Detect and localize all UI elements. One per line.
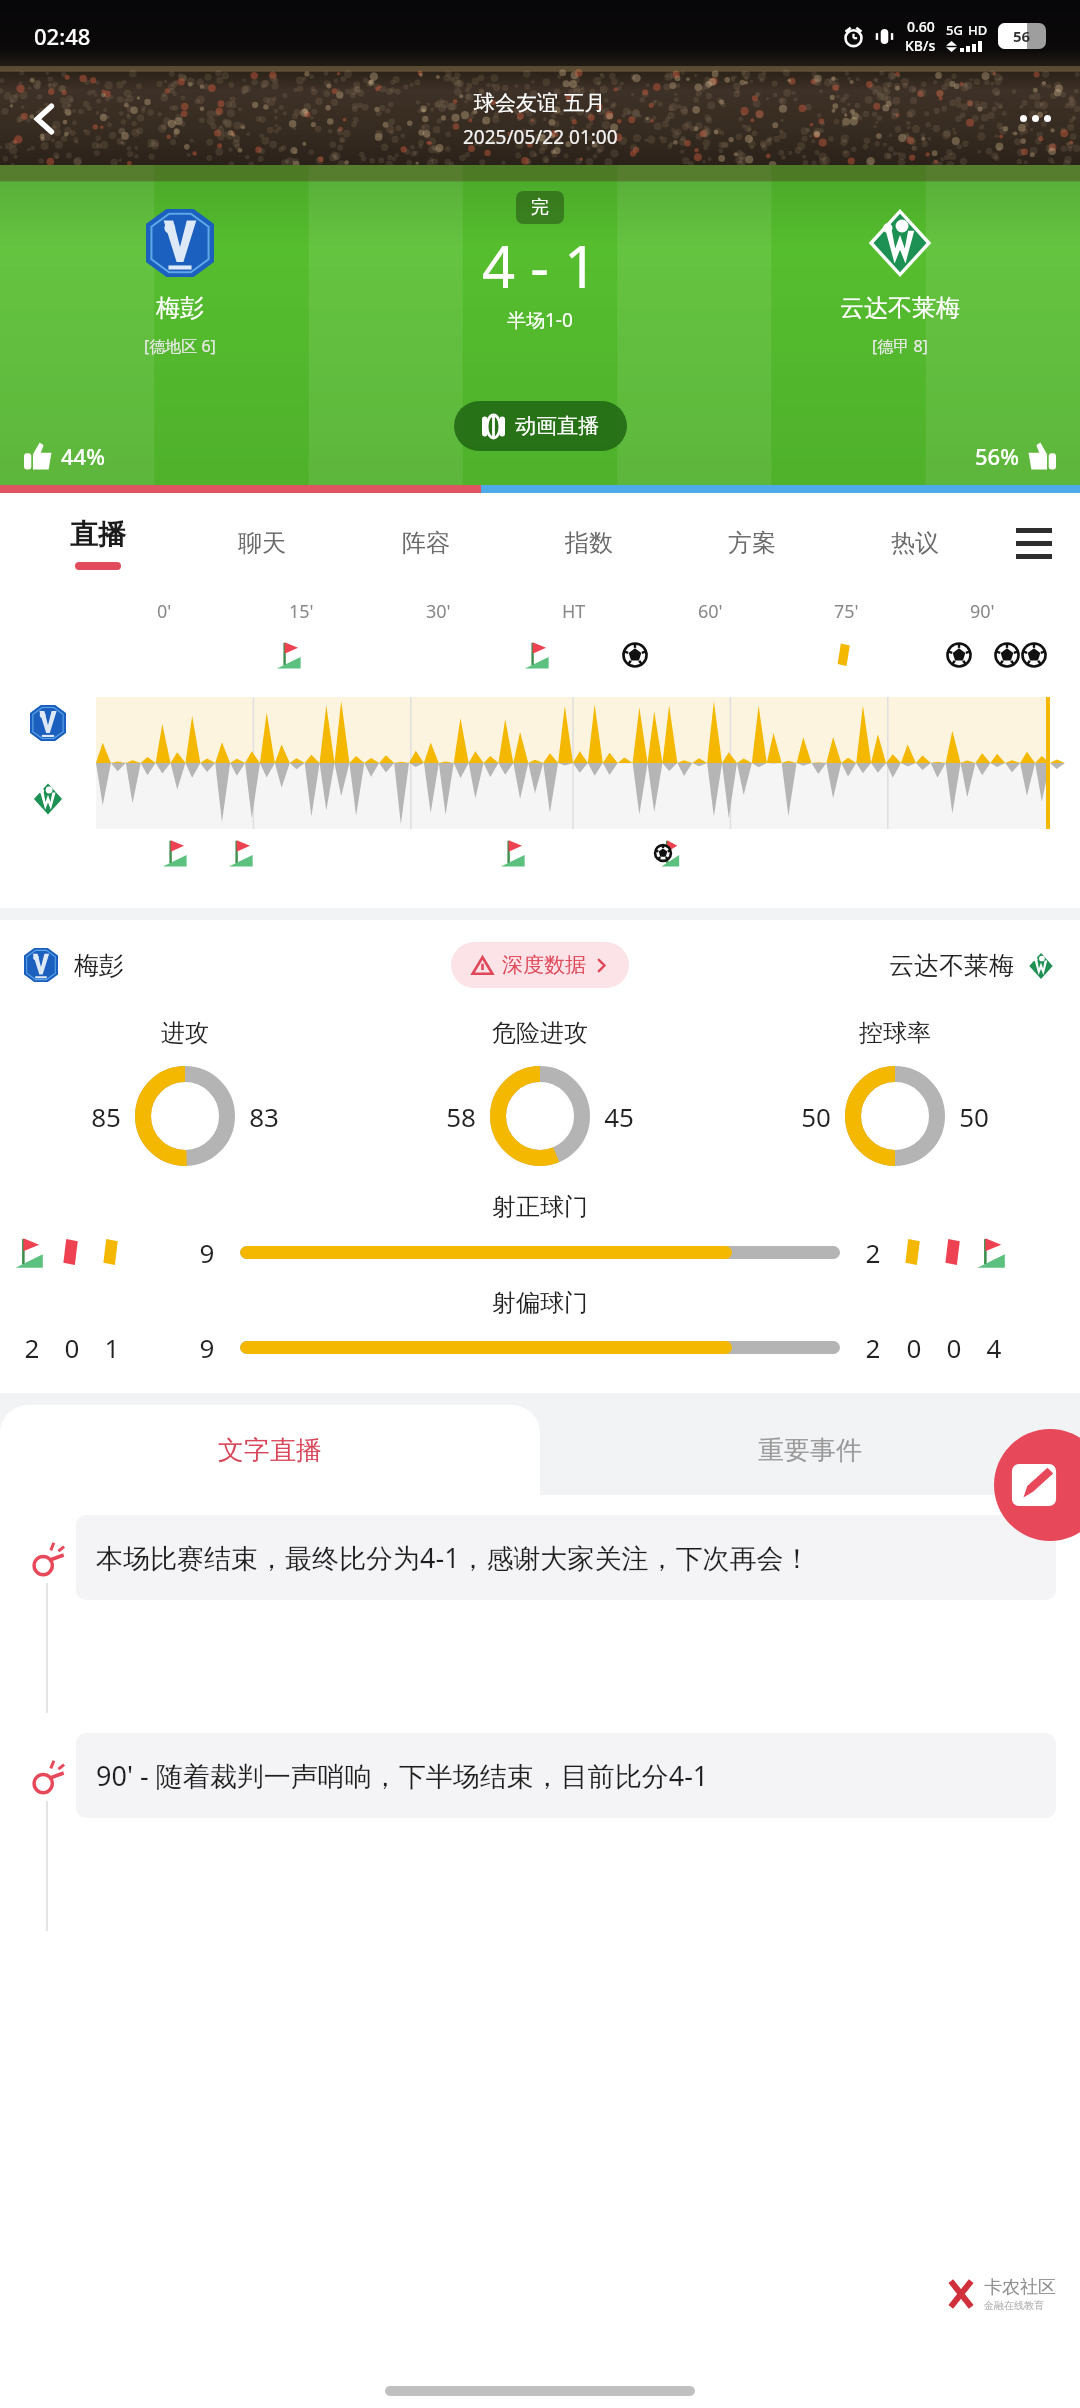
staticText: HT [562,599,586,624]
staticText: 90' [970,599,995,624]
staticText: 阵容 [402,528,450,558]
staticText: 完 [531,196,549,219]
button[interactable]: 聊天 [180,493,344,593]
staticText: 45 [590,1099,648,1134]
staticText: 方案 [728,528,776,558]
staticText: [德甲 8] [872,335,928,357]
staticText: 2025/05/22 01:00 [463,124,618,150]
button[interactable]: 文字直播 [0,1405,540,1495]
staticText: HD [968,21,988,39]
staticText: 控球率 [859,1018,931,1048]
staticText: 动画直播 [515,413,599,439]
button[interactable]: 阵容 [344,493,507,593]
staticText: 半场1-0 [507,307,573,333]
staticText: 射偏球门 [492,1288,588,1318]
staticText: 0 [936,1330,972,1365]
staticText: 聊天 [238,528,286,558]
staticText: 50 [945,1099,1003,1134]
staticText: 9 [184,1330,230,1365]
staticText: [德地区 6] [144,335,216,357]
staticText: 56 [1013,26,1031,46]
staticText: 30' [426,599,451,624]
button[interactable]: More tabs [996,493,1072,593]
staticText: 0 [896,1330,932,1365]
staticText: 56% [975,441,1019,471]
staticText: 2 [14,1330,50,1365]
staticText: 15' [289,599,314,624]
staticText: 指数 [565,528,613,558]
staticText: 直播 [70,517,126,552]
button[interactable]: 动画直播 [454,401,627,451]
staticText: 热议 [891,528,939,558]
staticText: 危险进攻 [492,1018,588,1048]
staticText: 球会友谊 五月 [474,88,606,117]
staticText: 0.60 [907,17,935,36]
staticText: 90' - 随着裁判一声哨响，下半场结束，目前比分4-1 [96,1757,709,1794]
staticText: 2 [850,1235,896,1270]
staticText: 1 [94,1330,130,1365]
staticText: 9 [184,1235,230,1270]
button[interactable]: Back [0,72,90,165]
staticText: 云达不莱梅 [840,293,960,323]
button[interactable]: Write a post [994,1429,1080,1541]
staticText: 58 [432,1099,490,1134]
staticText: 4 - 1 [482,226,598,305]
button[interactable]: 深度数据 [451,942,629,988]
staticText: 83 [235,1099,293,1134]
staticText: 深度数据 [502,952,586,978]
staticText: 44% [61,441,105,471]
button[interactable]: More options [990,72,1080,165]
staticText: 2 [850,1330,896,1365]
staticText: 云达不莱梅 [889,950,1014,981]
staticText: 射正球门 [492,1192,588,1222]
staticText: 60' [698,599,723,624]
button[interactable]: 重要事件 [540,1405,1080,1495]
button[interactable]: 方案 [670,493,833,593]
staticText: 卡农社区 [984,2276,1056,2299]
staticText: 梅彭 [74,950,124,981]
staticText: 本场比赛结束，最终比分为4-1，感谢大家关注，下次再会！ [96,1539,811,1576]
staticText: 4 [976,1330,1012,1365]
button[interactable]: 热议 [833,493,996,593]
staticText: 85 [77,1099,135,1134]
button[interactable]: 指数 [507,493,670,593]
staticText: 进攻 [161,1018,209,1048]
staticText: KB/s [905,36,936,55]
staticText: 0 [54,1330,90,1365]
button[interactable]: 直播 [16,493,180,593]
staticText: 0' [157,599,172,624]
staticText: 02:48 [34,21,91,51]
staticText: 75' [834,599,859,624]
staticText: 50 [787,1099,845,1134]
staticText: 梅彭 [156,293,204,323]
staticText: 5G [946,21,963,39]
staticText: 文字直播 [218,1434,322,1467]
staticText: 金融在线教育 [984,2299,1044,2312]
staticText: 重要事件 [758,1434,862,1467]
